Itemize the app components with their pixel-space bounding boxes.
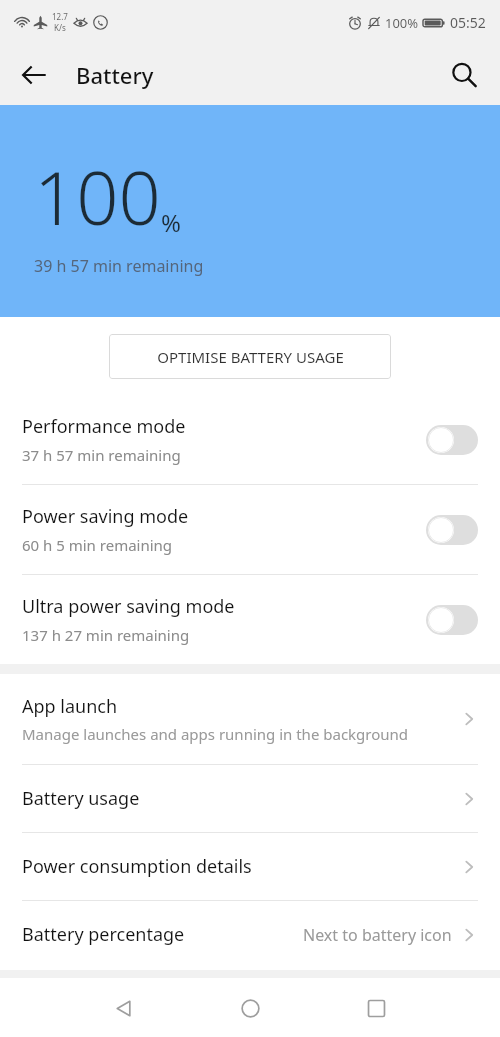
staticText: Power consumption details bbox=[22, 854, 252, 879]
button[interactable]: Performance mode bbox=[0, 395, 500, 484]
staticText: OPTIMISE BATTERY USAGE bbox=[157, 347, 344, 367]
button[interactable]: Home bbox=[223, 981, 277, 1035]
staticText: 39 h 57 min remaining bbox=[34, 255, 204, 277]
staticText: % bbox=[161, 206, 181, 239]
staticText: Ultra power saving mode bbox=[22, 594, 235, 619]
button[interactable]: Battery usage bbox=[0, 765, 500, 832]
staticText: 100% bbox=[385, 14, 419, 32]
staticText: App launch bbox=[22, 694, 118, 719]
staticText: Performance mode bbox=[22, 414, 186, 439]
staticText: 60 h 5 min remaining bbox=[22, 535, 173, 555]
staticText: Manage launches and apps running in the … bbox=[22, 724, 409, 744]
button[interactable]: Ultra power saving mode bbox=[0, 575, 500, 664]
button[interactable]: Back bbox=[10, 51, 58, 99]
staticText: Power saving mode bbox=[22, 504, 189, 529]
button[interactable]: Power saving mode bbox=[0, 485, 500, 574]
button[interactable]: Recent apps bbox=[349, 981, 403, 1035]
staticText: 137 h 27 min remaining bbox=[22, 625, 190, 645]
button[interactable]: Search bbox=[440, 51, 488, 99]
staticText: 37 h 57 min remaining bbox=[22, 445, 181, 465]
button[interactable]: Back bbox=[97, 981, 151, 1035]
staticText: 100 bbox=[34, 146, 161, 247]
staticText: 05:52 bbox=[450, 13, 486, 32]
staticText: 12.7 bbox=[52, 11, 68, 22]
staticText: Battery usage bbox=[22, 786, 140, 811]
button[interactable]: Battery percentage bbox=[0, 901, 500, 968]
button[interactable]: Power consumption details bbox=[0, 833, 500, 900]
staticText: K/s bbox=[54, 22, 66, 33]
staticText: Next to battery icon bbox=[303, 924, 452, 946]
staticText: Battery bbox=[76, 60, 154, 90]
staticText: Battery percentage bbox=[22, 922, 185, 947]
button[interactable]: OPTIMISE BATTERY USAGE bbox=[109, 334, 391, 379]
button[interactable]: App launch bbox=[0, 674, 500, 764]
